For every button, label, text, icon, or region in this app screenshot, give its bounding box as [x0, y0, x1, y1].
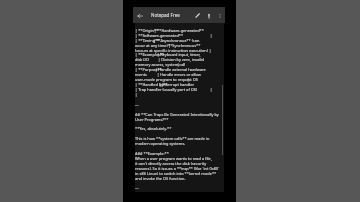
staticText: and invoke the OS function.	[135, 176, 186, 181]
staticText: | Division by zero, invalid	[158, 57, 204, 62]
staticText: | **Handled by**	[135, 82, 168, 87]
staticText: | Handle errors or allow	[157, 72, 201, 77]
staticText: Notepad Free	[151, 12, 180, 18]
staticText: |	[210, 87, 213, 92]
staticText: (occurs at specific instruction executio…	[135, 48, 212, 53]
staticText: ### **Example:**	[135, 151, 169, 156]
staticText: ## **Can Traps Be Generated Intentionall…	[135, 112, 219, 117]
staticText: | Trap handler (usually part of OS)	[135, 87, 198, 92]
staticText: |	[135, 92, 138, 97]
button[interactable]: Navigate up	[133, 9, 146, 22]
staticText: | **Timing**	[135, 38, 160, 43]
staticText: | **Examples**	[135, 52, 165, 57]
staticText: user-mode program to request OS	[135, 77, 198, 82]
staticText: | **Purpose**	[135, 67, 162, 72]
staticText: reasons). So it issues a **trap** (like …	[135, 166, 220, 171]
button[interactable]	[135, 23, 224, 192]
staticText: **Yes, absolutely.**	[135, 126, 172, 131]
staticText: **Synchronous**	[168, 43, 201, 48]
staticText: |	[210, 33, 213, 38]
button[interactable]: Voice input	[203, 10, 214, 21]
staticText: | **Software-generated**	[135, 33, 184, 38]
staticText: User Programs?**	[135, 117, 169, 122]
staticText: When a user program wants to read a file…	[135, 156, 212, 161]
staticText: | **Origin**	[135, 28, 159, 33]
staticText: ---	[135, 185, 139, 190]
button[interactable]: More options	[214, 10, 225, 21]
staticText: disk I/O	[135, 57, 150, 62]
staticText: events	[135, 72, 147, 77]
staticText: it can't directly access the disk (secur…	[135, 161, 207, 166]
staticText: | **Hardware-generated**	[154, 28, 204, 33]
staticText: modern operating systems.	[135, 141, 186, 146]
staticText: ---	[135, 102, 139, 107]
staticText: |	[187, 77, 190, 82]
staticText: in x86 Linux) to switch into **kernel mo…	[135, 171, 217, 176]
staticText: |	[177, 62, 180, 67]
staticText: occur at any time) |	[135, 43, 171, 48]
staticText: memory access, system call	[135, 62, 186, 67]
staticText: | Handle external hardware	[155, 67, 206, 72]
staticText: This is how **system calls** are made in	[135, 136, 210, 141]
button[interactable]: Edit	[192, 10, 203, 21]
staticText: | Keyboard input, timer,	[157, 52, 201, 57]
staticText: | Interrupt handler	[159, 82, 195, 87]
staticText: | **Asynchronous** (can	[153, 38, 200, 43]
